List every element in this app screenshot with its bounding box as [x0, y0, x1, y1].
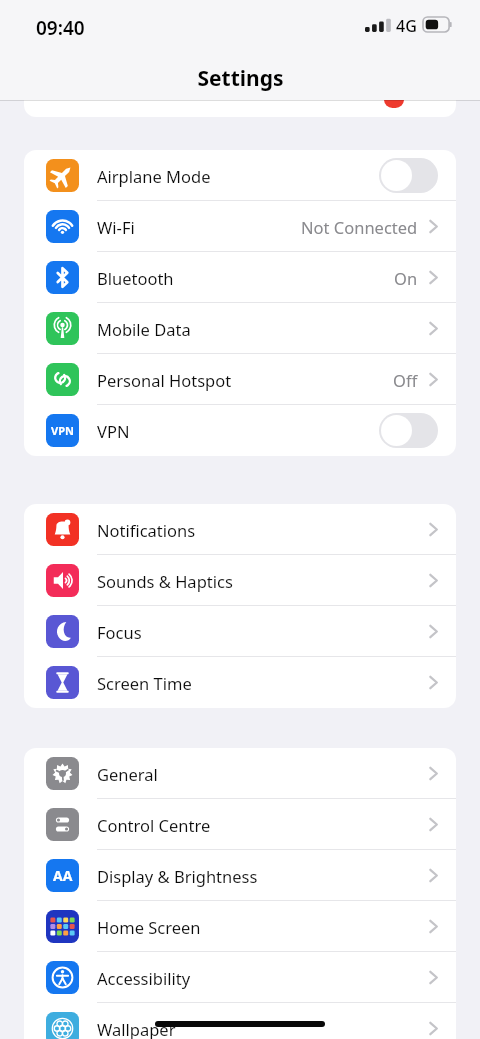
staticText: 4G [396, 15, 417, 37]
staticText: Bluetooth [97, 267, 174, 289]
staticText: Accessibility [97, 967, 191, 989]
button[interactable]: General [24, 748, 456, 799]
staticText: Focus [97, 621, 142, 643]
button[interactable]: Apple Account [24, 100, 456, 117]
staticText: Airplane Mode [97, 165, 211, 187]
staticText: Settings [197, 64, 284, 93]
button[interactable]: AA [24, 850, 456, 901]
staticText: Wi-Fi [97, 216, 135, 238]
button[interactable]: Airplane Mode [24, 150, 456, 201]
staticText: AA [53, 866, 73, 885]
button[interactable]: Personal Hotspot [24, 354, 456, 405]
staticText: Home Screen [97, 916, 201, 938]
staticText: 09:40 [36, 15, 85, 41]
button[interactable]: Notifications [24, 504, 456, 555]
staticText: Mobile Data [97, 318, 191, 340]
button[interactable]: Wallpaper [24, 1003, 456, 1039]
staticText: Wallpaper [97, 1018, 176, 1039]
button[interactable]: Sounds & Haptics [24, 555, 456, 606]
staticText: Not Connected [301, 216, 418, 238]
staticText: Off [393, 369, 418, 391]
staticText: VPN [51, 423, 74, 438]
button[interactable]: Focus [24, 606, 456, 657]
button[interactable]: Wi-Fi [24, 201, 456, 252]
button[interactable]: Control Centre [24, 799, 456, 850]
staticText: Display & Brightness [97, 865, 258, 887]
button[interactable]: VPN [24, 405, 456, 456]
button[interactable]: Bluetooth [24, 252, 456, 303]
staticText: Notifications [97, 519, 196, 541]
staticText: Personal Hotspot [97, 369, 232, 391]
button[interactable]: Accessibility [24, 952, 456, 1003]
button[interactable]: Screen Time [24, 657, 456, 708]
button[interactable]: Airplane Mode off [379, 158, 438, 193]
staticText: General [97, 763, 158, 785]
button[interactable]: Mobile Data [24, 303, 456, 354]
staticText: On [394, 267, 418, 289]
staticText: Screen Time [97, 672, 192, 694]
staticText: Control Centre [97, 814, 211, 836]
button[interactable]: Home Screen [24, 901, 456, 952]
button[interactable]: VPN off [379, 413, 438, 448]
staticText: VPN [97, 420, 130, 442]
staticText: Sounds & Haptics [97, 570, 233, 592]
